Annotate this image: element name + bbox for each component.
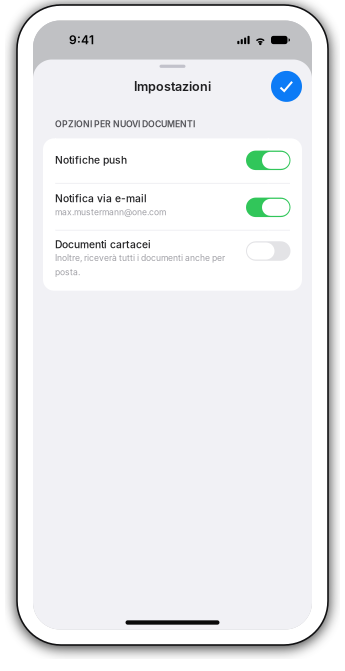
staticText: Notifiche push [55, 154, 127, 166]
staticText: Impostazioni [134, 79, 211, 94]
button[interactable]: Notifica via e-mail [43, 184, 302, 230]
button[interactable]: Documenti cartacei [43, 231, 302, 291]
staticText: OPZIONI PER NUOVI DOCUMENTI [55, 119, 195, 129]
button[interactable]: Conferma [266, 66, 306, 106]
button[interactable]: Notifiche push [43, 138, 302, 183]
staticText: 9:41 [69, 33, 94, 47]
staticText: max.mustermann@one.com [55, 207, 166, 217]
staticText: Inoltre, riceverà tutti i documenti anch… [55, 253, 225, 277]
staticText: Documenti cartacei [55, 238, 151, 251]
staticText: Notifica via e-mail [55, 192, 147, 205]
